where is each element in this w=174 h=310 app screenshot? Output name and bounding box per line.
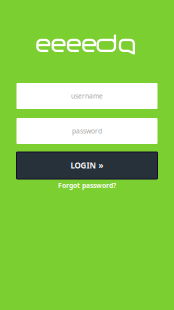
staticText: password (72, 127, 102, 135)
button[interactable]: username (16, 83, 157, 109)
button[interactable]: password (16, 118, 157, 144)
button[interactable]: LOGIN » (16, 152, 157, 179)
staticText: LOGIN » (70, 160, 103, 171)
staticText: Forgot password? (58, 181, 116, 190)
staticText: username (71, 92, 103, 100)
button[interactable]: Forgot password? (52, 179, 122, 192)
